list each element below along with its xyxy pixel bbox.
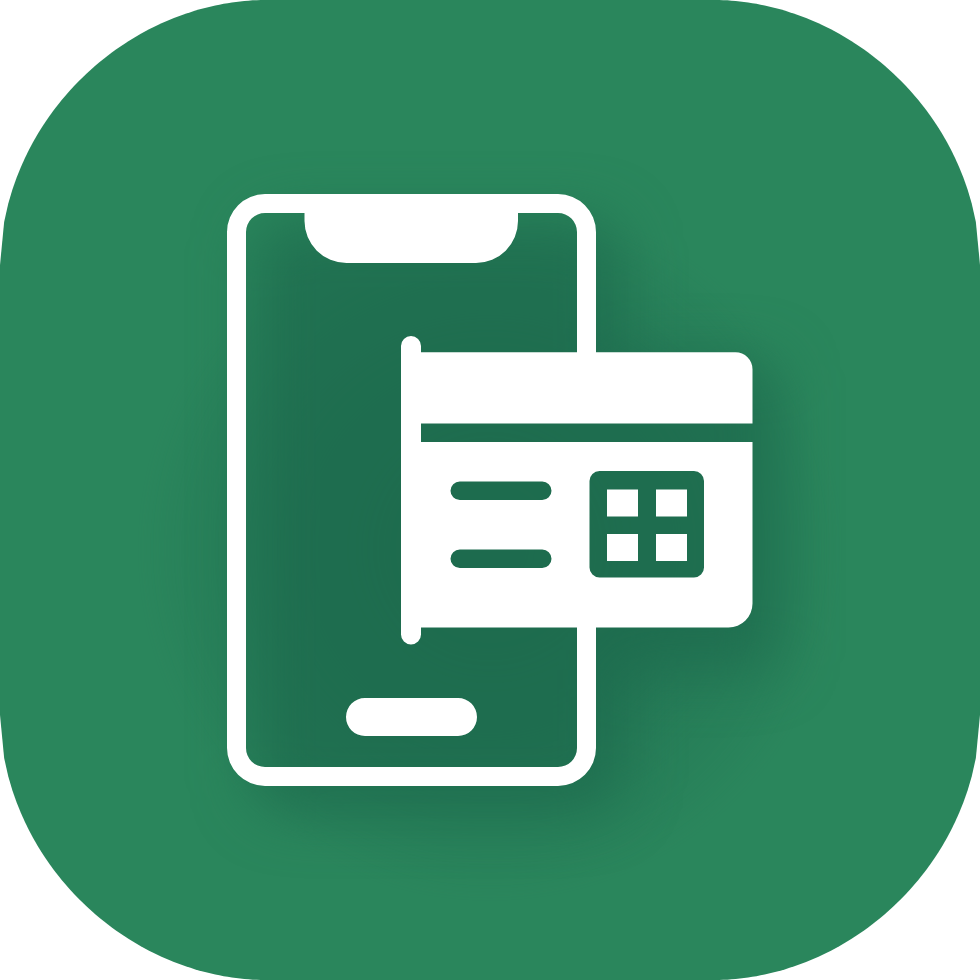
button[interactable]: Mobile payment app icon	[0, 0, 980, 980]
